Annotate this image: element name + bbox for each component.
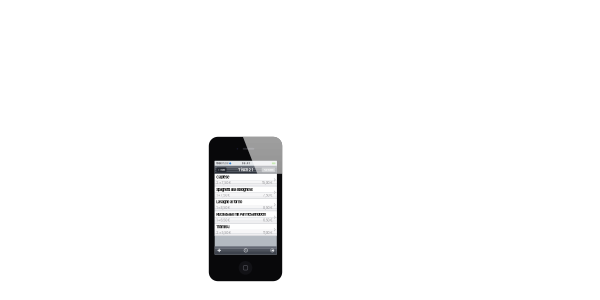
button[interactable]: Artikel hinzufügen — [217, 248, 221, 252]
staticText: Tisch 21 — [238, 167, 253, 172]
staticText: 1 * 6,50 € — [216, 218, 230, 222]
staticText: Tiramisu — [216, 225, 229, 229]
button[interactable]: Caprese — [215, 174, 277, 186]
staticText: 1 * 7,50 € — [216, 193, 230, 197]
staticText: Telekom.de — [216, 162, 228, 165]
staticText: Rucolasalat mit Parmesanhobeln — [216, 212, 266, 217]
staticText: Tische — [218, 168, 225, 171]
staticText: 6,50 € — [263, 218, 272, 222]
button[interactable]: Bezahlen — [270, 248, 274, 252]
staticText: 1 * 8,50 € — [216, 206, 230, 210]
staticText: 2 * 5,50 € — [216, 230, 231, 235]
staticText: 8,50 € — [263, 206, 272, 210]
staticText: 15,00 € — [262, 181, 272, 185]
staticText: Caprese — [216, 175, 229, 179]
button[interactable]: Rucolasalat mit Parmesanhobeln — [215, 211, 277, 223]
button[interactable]: Tiramisu — [215, 224, 277, 236]
button[interactable]: Lasagne al forno — [215, 199, 277, 211]
staticText: Lasagne al forno — [216, 200, 242, 204]
button[interactable]: Spaghetti alla Bolognese — [215, 186, 277, 198]
staticText: Abrechnen — [264, 168, 273, 171]
staticText: 09:41 — [242, 162, 250, 165]
staticText: Spaghetti alla Bolognese — [216, 187, 253, 192]
staticText: 11,00 € — [263, 230, 272, 235]
button[interactable]: Tische — [216, 167, 227, 172]
staticText: 7,50 € — [263, 193, 272, 197]
button[interactable]: Verlauf — [244, 248, 248, 252]
staticText: 2 * 7,50 € — [216, 181, 231, 185]
button[interactable]: Abrechnen — [262, 167, 275, 172]
